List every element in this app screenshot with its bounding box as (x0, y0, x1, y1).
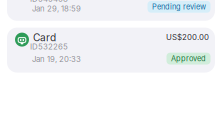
staticText: Jan 29, 18:59 (32, 4, 81, 13)
button[interactable]: Card (7, 0, 215, 21)
staticText: US$200.00 (166, 32, 209, 42)
staticText: ID532265 (30, 42, 68, 51)
staticText: Jan 19, 20:33 (32, 54, 81, 64)
staticText: Pending review (152, 2, 206, 11)
staticText: Approved (171, 54, 206, 63)
button[interactable]: Card (7, 28, 215, 73)
staticText: Card (33, 31, 56, 44)
staticText: ID545468 (30, 0, 68, 4)
